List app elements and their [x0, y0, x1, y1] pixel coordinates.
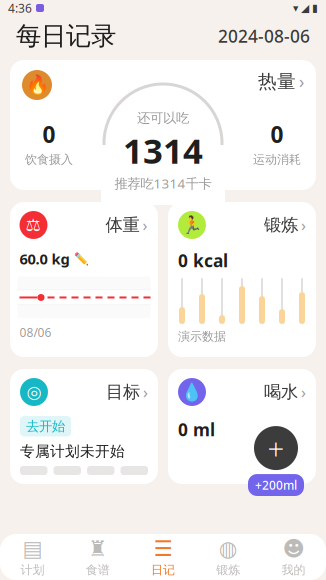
staticText: 热量: [258, 70, 296, 93]
button[interactable]: ⚖: [10, 202, 158, 357]
staticText: 我的: [281, 563, 305, 577]
button[interactable]: 🏃: [168, 202, 316, 357]
staticText: ☻: [282, 536, 304, 561]
button[interactable]: 我的: [261, 534, 326, 580]
staticText: 每日记录: [16, 20, 116, 51]
staticText: 0: [42, 119, 55, 149]
staticText: +: [267, 429, 284, 468]
staticText: ▤: [23, 536, 43, 561]
staticText: 08/06: [19, 324, 51, 340]
staticText: ›: [301, 214, 306, 236]
staticText: 专属计划未开始: [20, 442, 125, 460]
button[interactable]: 日记: [130, 534, 196, 580]
staticText: ›: [143, 381, 148, 403]
staticText: ▾ ◢ ▮: [293, 2, 318, 14]
staticText: 目标: [106, 381, 140, 403]
staticText: ☰: [153, 536, 172, 561]
staticText: ✏️: [73, 252, 88, 266]
staticText: ›: [301, 381, 306, 403]
staticText: 🏃: [181, 215, 203, 235]
staticText: 体重: [105, 214, 139, 236]
staticText: 2024-08-06: [218, 24, 310, 47]
button[interactable]: 💧: [168, 369, 316, 484]
staticText: 推荐吃1314千卡: [114, 174, 211, 192]
staticText: 锻炼: [216, 563, 240, 577]
staticText: 食谱: [86, 563, 110, 577]
staticText: +200ml: [255, 477, 297, 493]
staticText: 演示数据: [178, 329, 226, 344]
button[interactable]: ◎: [10, 369, 158, 484]
staticText: 0 ml: [178, 418, 215, 441]
staticText: 0 kcal: [178, 249, 228, 272]
staticText: 💧: [181, 382, 203, 402]
staticText: ♜: [88, 536, 107, 561]
staticText: 计划: [21, 563, 45, 577]
staticText: ◎: [26, 382, 41, 402]
staticText: 喝水: [264, 381, 298, 403]
staticText: 🔥: [25, 74, 48, 96]
staticText: 锻炼: [264, 214, 298, 236]
staticText: 运动消耗: [253, 152, 301, 167]
staticText: 日记: [151, 563, 175, 577]
staticText: ›: [142, 214, 147, 236]
staticText: 饮食摄入: [25, 152, 73, 167]
staticText: 去开始: [26, 418, 65, 434]
staticText: ⚖: [25, 215, 41, 235]
button[interactable]: 计划: [0, 534, 65, 580]
button[interactable]: 锻炼: [196, 534, 261, 580]
button[interactable]: 🔥: [10, 60, 316, 190]
staticText: 0: [270, 119, 283, 149]
staticText: ◍: [219, 536, 238, 561]
staticText: 4:36: [8, 0, 32, 16]
staticText: ›: [299, 70, 304, 93]
staticText: 1314: [123, 127, 203, 173]
button[interactable]: 食谱: [65, 534, 130, 580]
staticText: 60.0 kg: [19, 249, 69, 268]
staticText: 还可以吃: [137, 110, 189, 126]
